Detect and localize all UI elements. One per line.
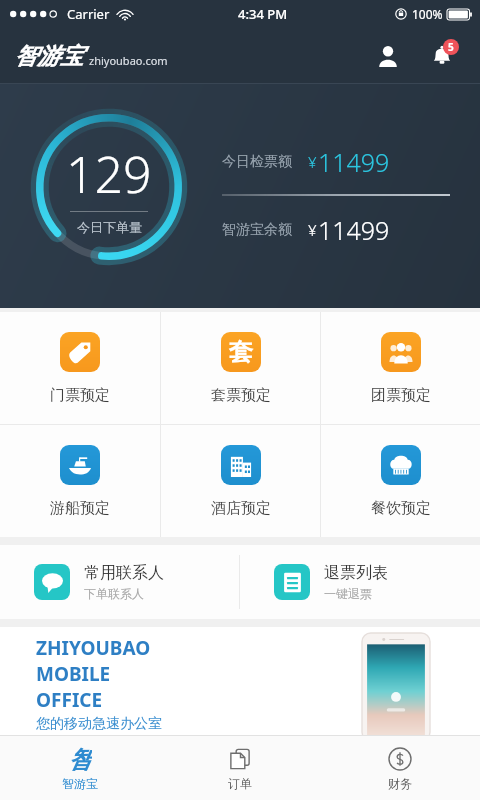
staticText: 今日下单量: [77, 219, 142, 235]
button[interactable]: 常用联系人: [0, 545, 239, 619]
staticText: 129: [66, 140, 152, 208]
staticText: 酒店预定: [211, 499, 271, 518]
button[interactable]: 游船预定: [0, 425, 160, 537]
button[interactable]: 智: [0, 736, 160, 800]
staticText: 11499: [318, 145, 390, 179]
button[interactable]: 财务: [320, 736, 480, 800]
staticText: MOBILE: [36, 661, 111, 687]
staticText: 游船预定: [50, 499, 110, 518]
staticText: 智游宝: [14, 42, 83, 71]
staticText: 门票预定: [50, 386, 110, 405]
staticText: 您的移动急速办公室: [36, 715, 162, 733]
staticText: 退票列表: [324, 563, 388, 583]
staticText: ¥: [308, 152, 317, 172]
staticText: 套票预定: [211, 386, 271, 405]
staticText: 套: [229, 337, 253, 367]
staticText: zhiyoubao.com: [89, 53, 168, 68]
button[interactable]: Account: [368, 36, 408, 76]
staticText: 财务: [388, 776, 412, 791]
staticText: ZHIYOUBAO: [36, 635, 151, 661]
staticText: 餐饮预定: [371, 499, 431, 518]
staticText: 5: [448, 40, 454, 54]
staticText: 4:34 PM: [238, 5, 288, 23]
staticText: 常用联系人: [84, 563, 164, 583]
staticText: 100%: [412, 6, 443, 22]
staticText: 今日检票额: [222, 153, 292, 171]
staticText: 智: [68, 745, 92, 772]
button[interactable]: 酒店预定: [161, 425, 320, 537]
staticText: 11499: [318, 213, 390, 247]
staticText: 下单联系人: [84, 586, 144, 601]
button[interactable]: 餐饮预定: [321, 425, 480, 537]
staticText: Carrier: [67, 5, 110, 23]
staticText: OFFICE: [36, 687, 103, 713]
staticText: 订单: [228, 776, 252, 791]
button[interactable]: 团票预定: [321, 312, 480, 424]
staticText: ¥: [308, 220, 317, 240]
staticText: 一键退票: [324, 586, 372, 601]
staticText: 团票预定: [371, 386, 431, 405]
button[interactable]: Notifications: [422, 36, 462, 76]
button[interactable]: 订单: [160, 736, 320, 800]
staticText: 智游宝余额: [222, 221, 292, 239]
button[interactable]: 门票预定: [0, 312, 160, 424]
button[interactable]: 套: [161, 312, 320, 424]
button[interactable]: 退票列表: [240, 545, 480, 619]
staticText: 智游宝: [62, 776, 98, 791]
